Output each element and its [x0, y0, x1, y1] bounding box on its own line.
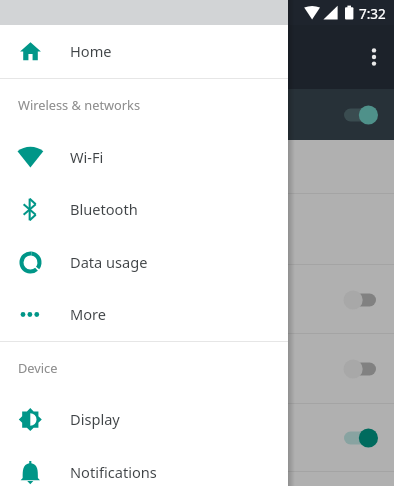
button[interactable]: Data usage	[0, 236, 288, 289]
button[interactable]: More	[0, 288, 288, 341]
staticText: Bluetooth	[70, 199, 138, 219]
button[interactable]	[0, 89, 394, 140]
button[interactable]: Display	[0, 393, 288, 446]
staticText: 7:32	[359, 5, 386, 23]
button[interactable]	[0, 472, 394, 486]
button[interactable]	[0, 194, 394, 265]
button[interactable]	[0, 265, 394, 334]
button[interactable]	[0, 334, 394, 404]
staticText: Wireless & networks	[18, 96, 141, 113]
button[interactable]: Wi-Fi	[0, 131, 288, 184]
button[interactable]	[0, 140, 394, 194]
button[interactable]: Notifications	[0, 446, 288, 486]
staticText: More	[70, 304, 107, 324]
staticText: Display	[70, 409, 120, 429]
staticText: Home	[70, 41, 112, 61]
staticText: Data usage	[70, 252, 148, 272]
staticText: Device	[18, 359, 58, 376]
button[interactable]	[0, 404, 394, 472]
button[interactable]: Home	[0, 25, 288, 78]
staticText: Notifications	[70, 462, 157, 482]
button[interactable]: More options	[354, 37, 394, 77]
button[interactable]: Bluetooth	[0, 183, 288, 236]
staticText: Wi-Fi	[70, 147, 104, 167]
